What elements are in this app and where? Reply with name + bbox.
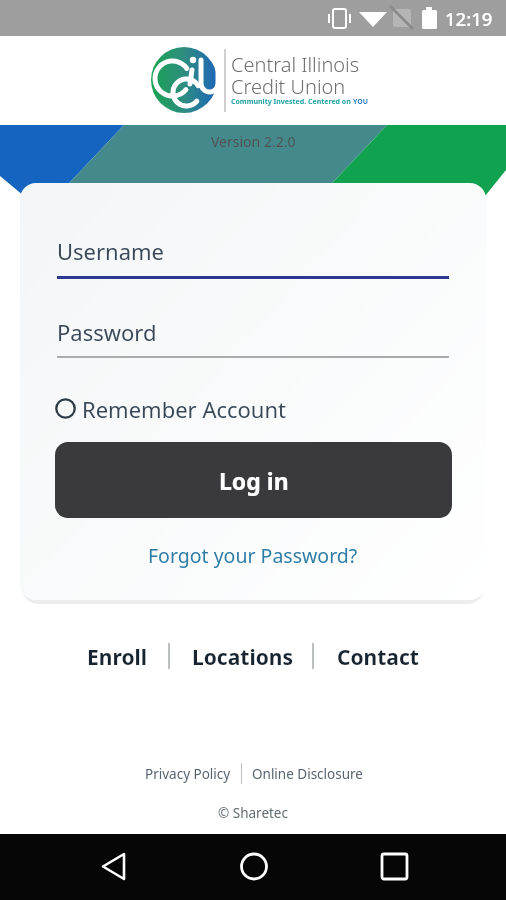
staticText: Online Disclosure	[252, 765, 363, 783]
button[interactable]: Locations	[185, 642, 300, 672]
staticText: Enroll	[87, 643, 148, 672]
staticText: YOU	[353, 97, 369, 107]
button[interactable]: Forgot your Password?	[148, 542, 358, 569]
button[interactable]	[234, 846, 274, 886]
button[interactable]: Password	[57, 317, 449, 358]
staticText: Community Invested. Centered on	[231, 97, 353, 107]
staticText: © Sharetec	[218, 804, 288, 822]
staticText: Password	[57, 317, 157, 347]
staticText: 12:19	[445, 6, 493, 31]
button[interactable]: Username	[57, 236, 449, 278]
button[interactable]: Log in	[55, 442, 452, 518]
staticText: Remember Account	[82, 394, 287, 422]
staticText: Username	[57, 236, 165, 266]
staticText: Locations	[192, 643, 293, 672]
staticText: Privacy Policy	[145, 765, 231, 783]
button[interactable]: Remember Account	[55, 394, 287, 422]
button[interactable]: Contact	[330, 642, 425, 672]
staticText: Credit Union	[231, 73, 346, 100]
button[interactable]: Online Disclosure	[250, 764, 365, 784]
button[interactable]	[95, 846, 135, 886]
staticText: Central Illinois	[231, 51, 360, 78]
button[interactable]	[374, 846, 414, 886]
staticText: Version 2.2.0	[211, 132, 296, 151]
staticText: Log in	[219, 465, 289, 496]
button[interactable]: Enroll	[80, 642, 155, 672]
button[interactable]: Privacy Policy	[140, 764, 235, 784]
staticText: Contact	[337, 643, 419, 672]
